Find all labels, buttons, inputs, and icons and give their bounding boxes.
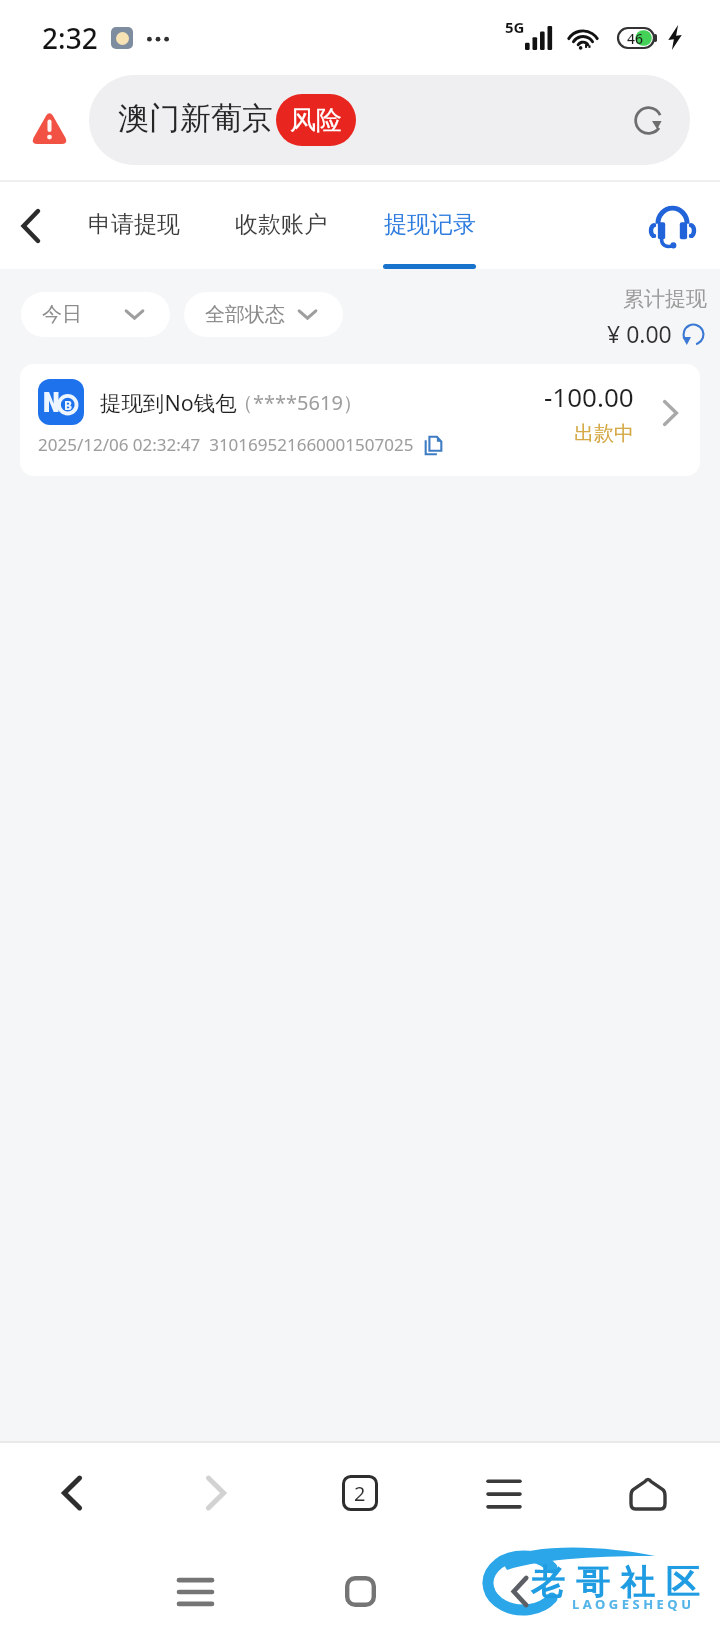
button[interactable]: Home [300,1543,420,1640]
button[interactable]: Recent apps [135,1543,255,1640]
staticText: 2:32 [42,19,98,57]
staticText: 2025/12/06 02:32:47 31016952166000150702… [38,433,414,456]
button[interactable]: 提现记录 [369,182,490,269]
staticText: 申请提现 [88,210,180,239]
staticText: 提现到No钱包 [100,388,237,417]
staticText: LAOGESHEQU [572,1595,695,1613]
staticText: 提现记录 [384,210,476,239]
staticText: （****5619） [233,389,363,416]
button[interactable]: 今日 [21,292,170,337]
staticText: 老哥社区 [525,1561,705,1604]
button[interactable]: Back [0,1443,144,1543]
button[interactable]: 收款账户 [221,182,341,269]
staticText: 今日 [42,302,82,327]
button[interactable]: 澳门新葡京 [89,75,690,165]
button[interactable]: 申请提现 [74,182,194,269]
button[interactable]: Menu [432,1443,576,1543]
staticText: 出款中 [574,421,634,446]
button[interactable]: Tabs [288,1443,432,1543]
button[interactable]: Back [0,182,62,269]
staticText: B [64,397,72,413]
staticText: 全部状态 [205,302,285,327]
staticText: 澳门新葡京 [118,99,273,138]
staticText: 风险 [290,104,342,137]
button[interactable]: B [20,364,700,476]
staticText: 46 [627,29,644,48]
button[interactable]: Risk warning [21,101,77,153]
staticText: ¥ 0.00 [607,318,672,349]
button[interactable]: 全部状态 [184,292,343,337]
button[interactable]: Copy order number [424,435,442,455]
button[interactable]: Customer service [624,182,720,269]
staticText: 收款账户 [235,210,327,239]
button[interactable]: Refresh page [626,98,670,142]
button[interactable]: Back [460,1543,580,1640]
staticText: 累计提现 [623,286,707,312]
staticText: -100.00 [544,379,634,414]
button[interactable]: Forward [144,1443,288,1543]
staticText: 5G [505,17,525,37]
staticText: 2 [354,1480,366,1507]
button[interactable]: Home [576,1443,720,1543]
button[interactable]: Refresh total [679,320,707,348]
